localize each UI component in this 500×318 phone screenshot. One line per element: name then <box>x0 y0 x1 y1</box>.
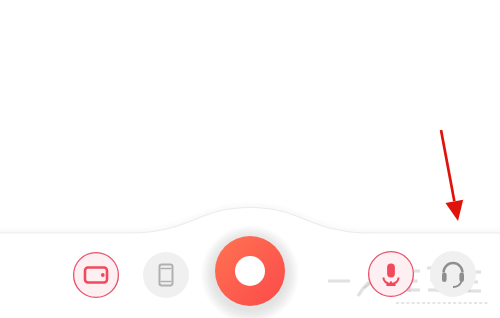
button[interactable]: Start recording <box>215 236 285 306</box>
button[interactable]: Microphone <box>368 251 414 297</box>
button[interactable]: Phone camera <box>143 252 189 298</box>
button[interactable]: Record screen <box>73 252 119 298</box>
button[interactable]: Audio source <box>430 251 476 297</box>
